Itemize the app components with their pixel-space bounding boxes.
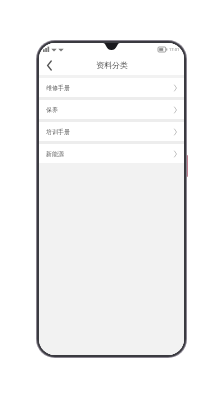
staticText: 培训手册 — [46, 128, 70, 136]
button[interactable]: 保养 — [39, 100, 184, 119]
staticText: 新能源 — [46, 150, 64, 158]
button[interactable]: 新能源 — [39, 144, 184, 163]
button[interactable]: 培训手册 — [39, 122, 184, 141]
button[interactable]: Back — [39, 55, 59, 75]
button[interactable]: 维修手册 — [39, 78, 184, 97]
staticText: 17:01 — [169, 47, 180, 52]
staticText: 资料分类 — [96, 60, 128, 70]
staticText: 保养 — [46, 106, 58, 114]
staticText: 维修手册 — [46, 84, 70, 92]
